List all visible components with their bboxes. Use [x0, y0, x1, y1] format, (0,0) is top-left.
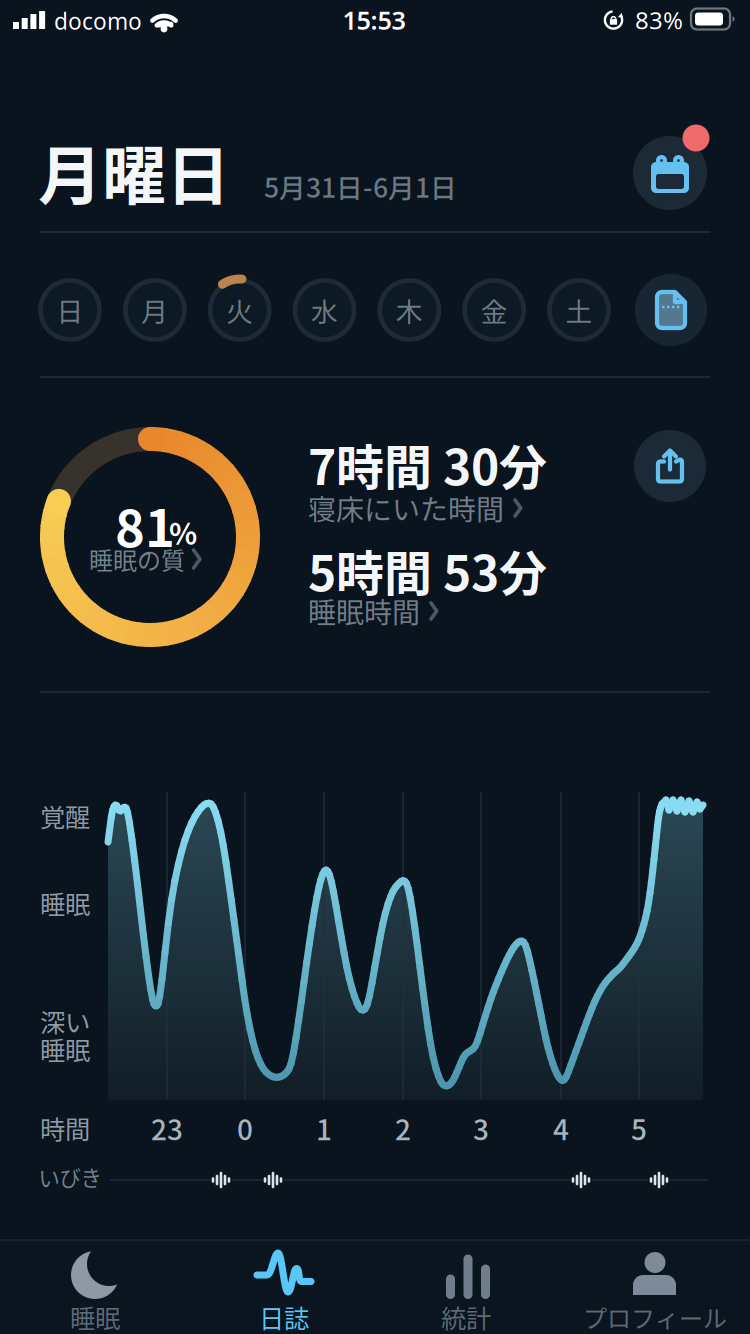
- staticText: プロフィール: [583, 1300, 727, 1334]
- staticText: 81: [115, 488, 175, 562]
- button[interactable]: 統計: [396, 1241, 536, 1333]
- button[interactable]: 日: [36, 276, 104, 344]
- button[interactable]: プロフィール: [570, 1241, 740, 1333]
- staticText: 3: [473, 1108, 489, 1148]
- staticText: 2: [395, 1108, 411, 1148]
- staticText: 睡眠時間: [308, 591, 420, 631]
- staticText: 5時間 53分: [308, 535, 547, 605]
- staticText: 日: [56, 291, 83, 329]
- staticText: 土: [565, 291, 592, 329]
- staticText: 時間: [40, 1110, 90, 1146]
- button[interactable]: 日誌: [214, 1241, 354, 1333]
- button[interactable]: 寝床にいた時間: [308, 487, 558, 529]
- button[interactable]: 81: [79, 480, 219, 590]
- button[interactable]: 共有: [632, 428, 708, 504]
- button[interactable]: 水: [290, 276, 358, 344]
- button[interactable]: 睡眠時間: [308, 590, 468, 632]
- staticText: 睡眠: [40, 1031, 90, 1067]
- staticText: 統計: [441, 1299, 491, 1334]
- staticText: 月: [141, 291, 168, 329]
- staticText: docomo: [54, 6, 142, 36]
- staticText: 睡眠の質: [89, 542, 185, 576]
- staticText: 金: [481, 291, 508, 329]
- button[interactable]: 木: [375, 276, 443, 344]
- button[interactable]: 土: [545, 276, 613, 344]
- staticText: %: [169, 511, 197, 553]
- staticText: 睡眠: [70, 1299, 120, 1334]
- button[interactable]: 月: [121, 276, 189, 344]
- staticText: 7時間 30分: [308, 429, 547, 499]
- staticText: 火: [226, 291, 253, 329]
- button[interactable]: 睡眠: [25, 1241, 165, 1333]
- button[interactable]: カレンダー: [624, 127, 716, 219]
- staticText: 1: [316, 1108, 332, 1148]
- button[interactable]: 睡眠ノート: [633, 272, 709, 348]
- staticText: 83%: [635, 4, 683, 36]
- staticText: 5: [631, 1108, 647, 1148]
- staticText: 覚醒: [40, 798, 90, 834]
- staticText: 15:53: [342, 3, 405, 37]
- button[interactable]: 火: [206, 276, 274, 344]
- button[interactable]: 金: [460, 276, 528, 344]
- staticText: 睡眠: [40, 885, 90, 921]
- staticText: 月曜日: [38, 125, 230, 217]
- staticText: 0: [237, 1108, 253, 1148]
- staticText: いびき: [38, 1162, 101, 1192]
- staticText: 23: [151, 1108, 183, 1148]
- staticText: 5月31日-6月1日: [264, 167, 457, 205]
- staticText: 日誌: [259, 1299, 309, 1334]
- staticText: 4: [553, 1108, 569, 1148]
- staticText: 深い: [40, 1003, 90, 1039]
- staticText: 木: [396, 291, 423, 329]
- staticText: 水: [311, 291, 338, 329]
- staticText: 寝床にいた時間: [308, 488, 504, 528]
